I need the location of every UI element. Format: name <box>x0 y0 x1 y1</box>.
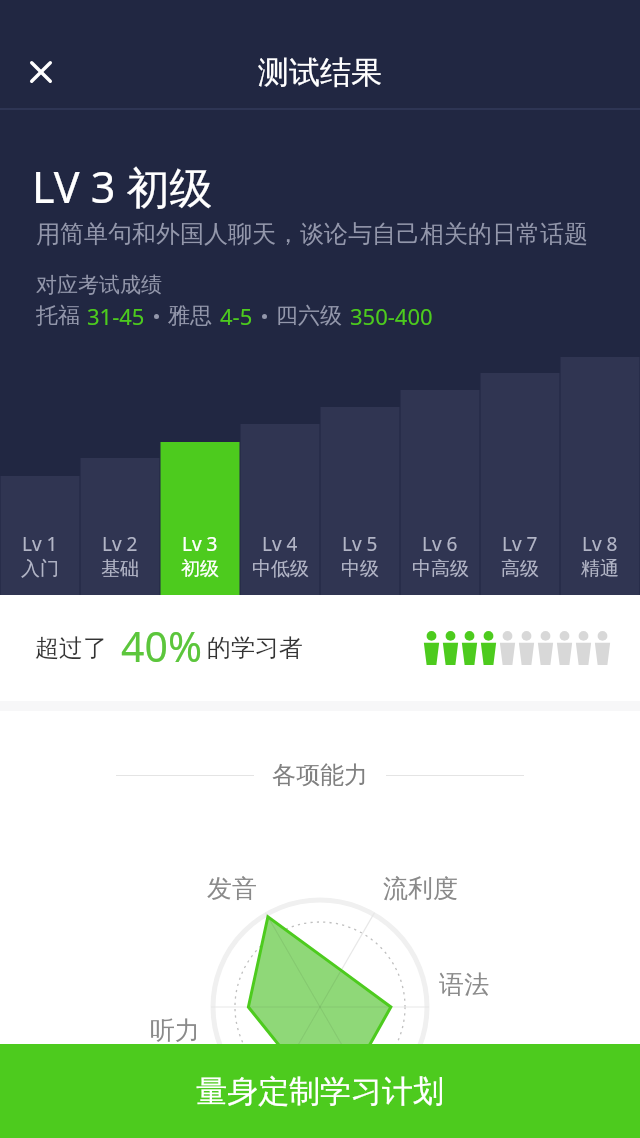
staticText: 语法 <box>439 969 489 1000</box>
staticText: 四六级 <box>276 302 342 330</box>
staticText: 托福 <box>36 302 80 330</box>
staticText: 中高级 <box>412 557 469 581</box>
staticText: 流利度 <box>383 873 458 904</box>
staticText: 40% <box>121 618 202 674</box>
staticText: 对应考试成绩 <box>36 272 162 298</box>
staticText: 350-400 <box>350 301 433 331</box>
staticText: 31-45 <box>87 301 145 331</box>
staticText: 高级 <box>501 557 539 581</box>
staticText: 入门 <box>21 557 59 581</box>
button[interactable]: 量身定制学习计划 <box>0 1044 640 1138</box>
staticText: 雅思 <box>168 302 212 330</box>
staticText: Lv 4 <box>262 531 298 557</box>
staticText: 超过了 <box>35 633 107 663</box>
staticText: Lv 3 <box>182 531 218 557</box>
staticText: Lv 6 <box>422 531 458 557</box>
staticText: Lv 5 <box>342 531 378 557</box>
staticText: 初级 <box>181 557 219 581</box>
button[interactable]: Close <box>13 40 69 103</box>
staticText: 各项能力 <box>272 760 368 790</box>
staticText: 用简单句和外国人聊天，谈论与自己相关的日常话题 <box>36 219 588 249</box>
staticText: LV 3 初级 <box>32 157 213 216</box>
staticText: 发音 <box>207 873 257 904</box>
staticText: Lv 8 <box>582 531 618 557</box>
staticText: 中级 <box>341 557 379 581</box>
staticText: 测试结果 <box>258 53 382 92</box>
staticText: Lv 1 <box>22 531 58 557</box>
staticText: 听力 <box>150 1015 200 1046</box>
staticText: 中低级 <box>252 557 309 581</box>
staticText: Lv 7 <box>502 531 538 557</box>
staticText: 的学习者 <box>207 633 303 663</box>
staticText: 精通 <box>581 557 619 581</box>
staticText: 量身定制学习计划 <box>196 1072 444 1111</box>
staticText: Lv 2 <box>102 531 138 557</box>
staticText: 基础 <box>101 557 139 581</box>
staticText: 4-5 <box>220 301 253 331</box>
